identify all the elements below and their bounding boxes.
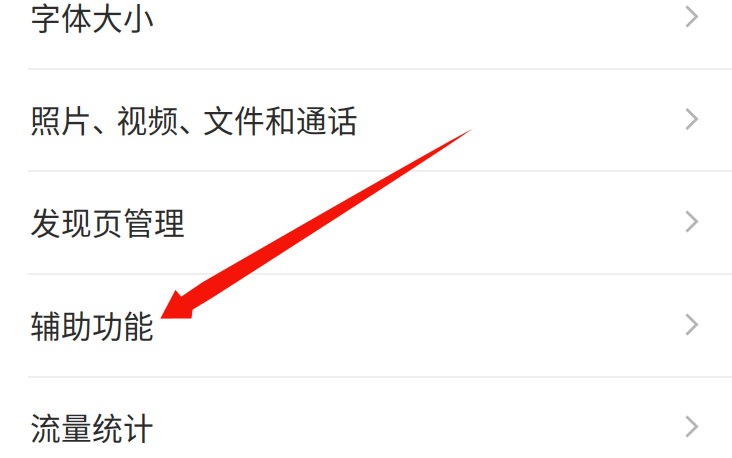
button[interactable]: 辅助功能 xyxy=(0,273,732,376)
button[interactable]: 发现页管理 xyxy=(0,170,732,273)
staticText: 文件和通话 xyxy=(203,97,358,141)
staticText: 发现页管理 xyxy=(30,199,185,244)
button[interactable]: 照片、 xyxy=(0,68,732,170)
staticText: 照片、 xyxy=(30,97,123,141)
staticText: 字体大小 xyxy=(30,0,154,39)
staticText: 视频、 xyxy=(116,97,209,141)
staticText: 辅助功能 xyxy=(30,302,154,347)
staticText: 流量统计 xyxy=(30,404,154,449)
button[interactable]: 流量统计 xyxy=(0,376,732,458)
button[interactable]: 字体大小 xyxy=(0,0,732,68)
